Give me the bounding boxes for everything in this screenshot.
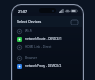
staticText: Select Devices xyxy=(17,19,42,24)
staticText: networkProxy - DEVICE/2 xyxy=(25,64,62,68)
staticText: HDMI Link - Direct xyxy=(25,45,52,49)
button[interactable]: HDMI Link - Direct xyxy=(13,43,82,51)
button[interactable]: Browser xyxy=(13,54,82,62)
staticText: Wi-Fi xyxy=(25,29,33,33)
staticText: Browser xyxy=(25,56,37,60)
staticText: networkRoute - DEVICE/1 xyxy=(25,37,62,41)
button[interactable]: networkProxy - DEVICE/2 xyxy=(13,62,82,70)
button[interactable]: Cast xyxy=(70,19,79,25)
button[interactable]: Wi-Fi xyxy=(13,27,82,35)
staticText: 21:07 xyxy=(18,9,27,14)
button[interactable]: networkRoute - DEVICE/1 xyxy=(13,35,82,43)
